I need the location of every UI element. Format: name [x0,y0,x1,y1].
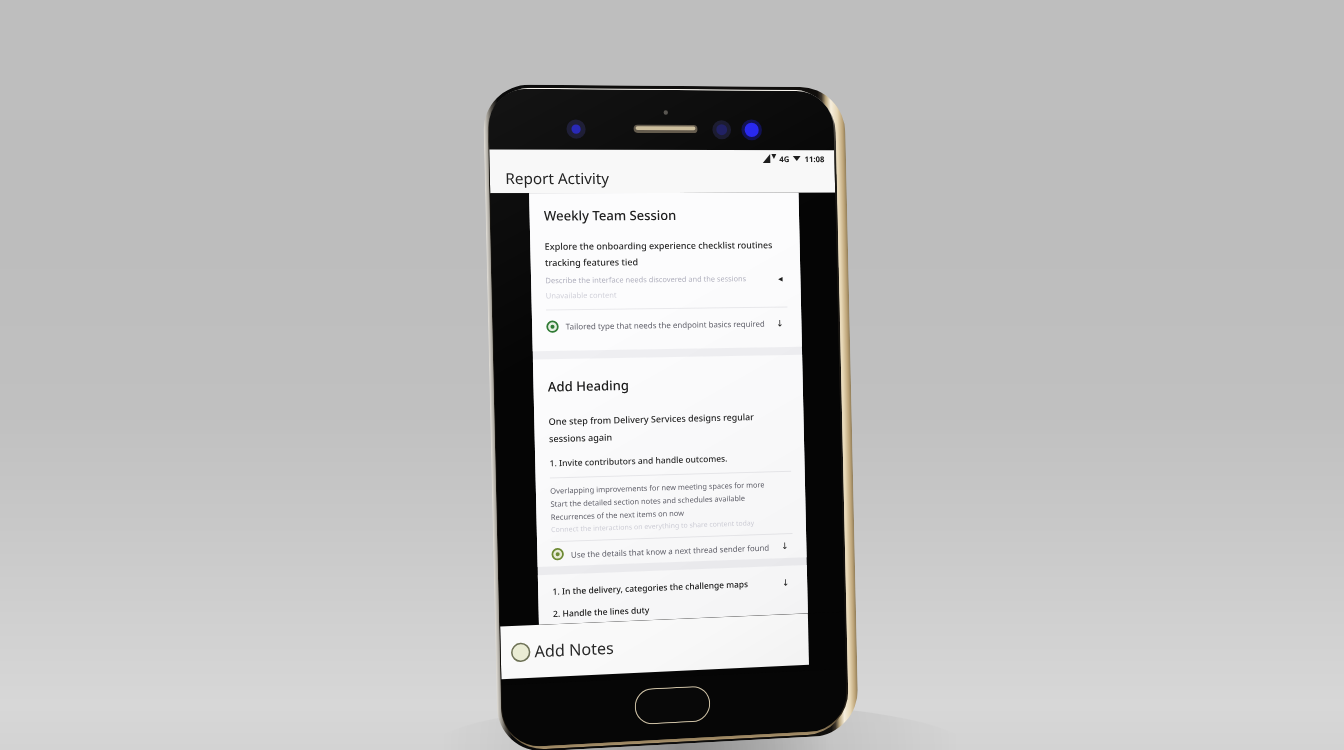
staticText: Unavailable content [546,290,617,300]
button[interactable]: Download [777,538,793,554]
staticText: 1. Invite contributors and handle outcom… [549,453,728,469]
button[interactable]: Home [635,686,710,724]
staticText: 4G [779,153,790,164]
button[interactable]: Add Notes [500,613,809,679]
staticText: Use the details that know a next thread … [571,542,769,560]
staticText: Recurrences of the next items on now [551,508,684,522]
staticText: Report Activity [505,168,610,188]
staticText: ↓ [782,578,790,588]
staticText: Overlapping improvements for new meeting… [550,479,765,496]
staticText: Describe the interface needs discovered … [545,273,747,285]
staticText: Tailored type that needs the endpoint ba… [566,318,766,332]
staticText: ↓ [776,318,784,328]
staticText: Add Notes [534,637,615,662]
staticText: 11:08 [804,153,825,164]
staticText: ◀ [778,275,783,282]
button[interactable]: Add Heading [533,355,807,567]
staticText: Connect the interactions on everything t… [551,518,754,535]
button[interactable]: Weekly Team Session [529,193,802,351]
staticText: One step from Delivery Services designs … [548,410,755,427]
staticText: sessions again [549,430,613,444]
staticText: ↓ [781,541,789,551]
button[interactable]: 1. In the delivery, categories the chall… [538,565,808,625]
staticText: 1. In the delivery, categories the chall… [552,578,749,598]
button[interactable]: Report Activity [490,165,835,190]
staticText: 2. Handle the lines duty [553,604,650,620]
staticText: Add Heading [548,376,630,396]
button[interactable]: Download [772,315,788,331]
button[interactable]: Expand section [773,271,787,285]
staticText: Weekly Team Session [544,206,677,224]
button[interactable]: Download [778,574,794,591]
staticText: tracking features tied [545,255,639,268]
staticText: Start the detailed section notes and sch… [550,493,746,509]
staticText: Explore the onboarding experience checkl… [544,238,772,252]
